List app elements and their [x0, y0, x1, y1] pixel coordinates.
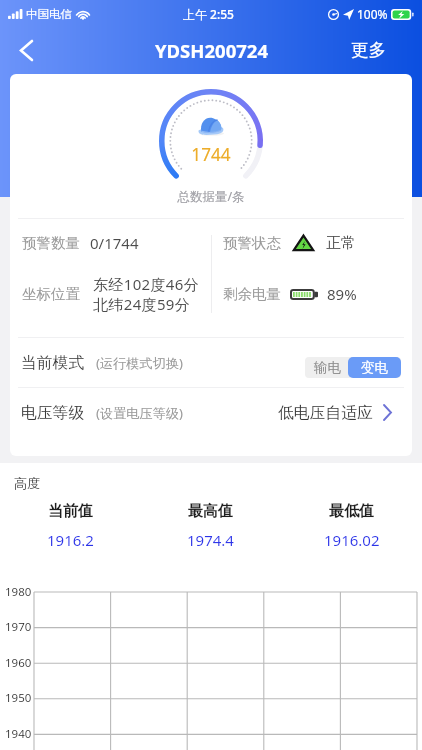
staticText: 1974.4	[187, 530, 234, 550]
button[interactable]: 输电	[305, 357, 349, 378]
staticText: 89%	[327, 284, 357, 304]
staticText: YDSH200724	[155, 38, 268, 63]
staticText: (设置电压等级)	[96, 404, 184, 422]
staticText: 中国电信	[26, 7, 72, 21]
staticText: 0/1744	[90, 233, 139, 253]
staticText: 正常	[326, 234, 356, 253]
staticText: 剩余电量	[223, 285, 281, 303]
staticText: 高度	[14, 475, 40, 491]
staticText: 1960	[5, 655, 32, 671]
staticText: 上午 2:55	[183, 6, 234, 22]
staticText: 最低值	[329, 502, 374, 521]
staticText: 变电	[361, 359, 388, 376]
staticText: 坐标位置	[22, 285, 80, 303]
staticText: 预警状态	[223, 234, 281, 252]
staticText: 最高值	[188, 502, 233, 521]
staticText: 东经102度46分 北纬24度59分	[93, 274, 200, 314]
staticText: 1980	[5, 584, 32, 600]
staticText: 1916.2	[47, 530, 94, 550]
staticText: 总数据量/条	[10, 188, 412, 205]
staticText: (运行模式切换)	[96, 354, 184, 372]
button[interactable]: Back	[0, 28, 53, 72]
staticText: 1950	[5, 690, 32, 706]
staticText: 100%	[357, 6, 388, 22]
staticText: 1744	[159, 143, 263, 166]
staticText: 预警数量	[22, 234, 80, 252]
button[interactable]: 变电	[348, 357, 401, 378]
staticText: 当前值	[48, 502, 93, 521]
staticText: 更多	[351, 39, 386, 61]
button[interactable]: 更多	[314, 28, 422, 72]
staticText: 1970	[5, 619, 32, 635]
staticText: 电压等级	[21, 403, 85, 423]
staticText: 1916.02	[324, 530, 380, 550]
staticText: 当前模式	[21, 353, 85, 373]
button[interactable]: 当前模式	[10, 338, 412, 387]
staticText: 输电	[314, 359, 341, 376]
button[interactable]: 电压等级	[10, 388, 412, 437]
staticText: 1940	[5, 726, 32, 742]
staticText: 低电压自适应	[278, 403, 373, 423]
